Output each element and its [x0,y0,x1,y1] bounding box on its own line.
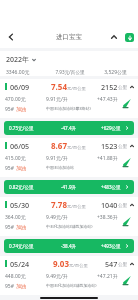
staticText: +47.21升 [97,273,118,280]
staticText: 06/09 [10,82,30,92]
staticText: 1523 [101,141,118,151]
staticText: 中国石化加油站(城西加油站) [46,283,97,288]
button[interactable]: Edit [121,156,132,167]
staticText: 95# [5,165,16,172]
button[interactable]: Edit [121,97,132,108]
staticText: 中石化加油站(城西加油站) [46,224,93,229]
staticText: 0.75元/公里 [9,125,34,131]
staticText: 7.78 [51,199,67,210]
staticText: 加油 [16,224,26,230]
button[interactable]: 0.75元/公里 [4,121,134,135]
staticText: 加油 [16,106,26,112]
staticText: 415.00元 [5,155,26,162]
staticText: +493公里 [101,243,121,249]
staticText: 元/百公里 [67,85,86,91]
staticText: 元/百公里 [67,203,86,209]
button[interactable]: Edit [121,215,132,226]
staticText: 9.03 [53,258,69,269]
staticText: 公里 [118,144,128,150]
staticText: 470.00元 [5,96,26,103]
staticText: 06/05 [10,141,30,151]
staticText: +41.88升 [97,155,118,162]
staticText: 7.54 [51,81,67,92]
staticText: 547 [105,259,118,269]
button[interactable]: 0.74元/公里 [4,239,134,253]
staticText: 7.93元/百公里 [43,69,97,75]
staticText: 9.91元/升 [46,96,68,103]
staticText: 05/24 [10,259,30,269]
staticText: 2022年 [6,55,30,65]
staticText: 公里 [118,203,128,209]
staticText: 95# [5,224,16,231]
staticText: 05/30 [10,200,30,210]
staticText: +483公里 [101,184,121,190]
staticText: 元/百公里 [69,262,88,268]
staticText: -38.4升 [61,243,77,249]
staticText: 加油 [16,283,26,289]
staticText: 2152 [101,82,118,92]
button[interactable]: Edit [121,274,132,285]
staticText: 公里 [118,85,128,91]
button[interactable]: Back [0,26,22,48]
button[interactable]: 06/05 [0,138,138,177]
button[interactable]: Download [125,33,134,42]
button[interactable]: 2022年 [0,51,138,76]
staticText: 9.49元/升 [46,273,68,280]
staticText: 95# [5,283,16,290]
staticText: 364.00元 [5,214,26,221]
staticText: 448.00元 [5,273,26,280]
staticText: 进口宝宝 [56,33,82,41]
staticText: +629公里 [101,125,121,131]
staticText: 加油 [16,165,26,171]
staticText: 3,529公里 [97,69,127,76]
staticText: 公里 [118,262,128,268]
staticText: 中国石油加油站(攀3路站) [46,106,91,111]
button[interactable]: 05/30 [0,197,138,236]
staticText: 元/百公里 [67,144,86,150]
staticText: 3346.00元 [6,69,43,76]
staticText: 0.74元/公里 [9,243,34,249]
staticText: +38.36升 [97,214,118,221]
button[interactable]: Collapse [107,30,121,44]
staticText: 95# [5,106,16,113]
staticText: 8.67 [51,140,67,151]
staticText: -41.9升 [61,184,77,190]
staticText: 0.82元/公里 [9,184,34,190]
staticText: 1040 [101,200,118,210]
button[interactable]: 06/09 [0,79,138,118]
staticText: 9.49元/升 [46,214,68,221]
staticText: 9.91元/升 [46,155,68,162]
staticText: +47.43升 [97,96,118,103]
button[interactable]: 0.82元/公里 [4,180,134,194]
button[interactable]: 05/24 [0,256,138,295]
staticText: 中国石油加油站 [46,165,74,170]
staticText: -47.4升 [61,125,77,131]
